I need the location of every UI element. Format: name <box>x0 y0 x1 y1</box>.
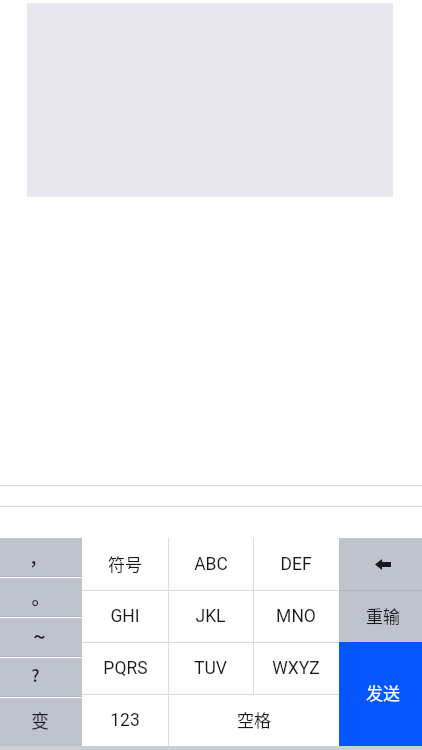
staticText: ~ <box>33 619 46 651</box>
button[interactable]: ? <box>0 658 82 697</box>
button[interactable]: JKL <box>168 590 253 642</box>
button[interactable]: 变 <box>0 698 82 746</box>
button[interactable]: ~ <box>0 618 82 657</box>
staticText: ? <box>31 662 40 687</box>
button[interactable]: DEF <box>253 538 339 590</box>
staticText: 重输 <box>366 603 400 628</box>
button[interactable]: GHI <box>82 590 168 642</box>
button[interactable]: MNO <box>253 590 339 642</box>
staticText: 空格 <box>237 707 271 732</box>
button[interactable]: 空格 <box>168 694 339 746</box>
button[interactable]: TUV <box>168 642 253 694</box>
staticText: WXYZ <box>272 658 320 679</box>
button[interactable]: Backspace <box>339 538 422 590</box>
staticText: 符号 <box>108 551 142 576</box>
staticText: MNO <box>276 606 316 627</box>
button[interactable]: 。 <box>0 578 82 617</box>
staticText: ABC <box>194 554 228 575</box>
button[interactable]: 发送 <box>339 642 422 746</box>
staticText: 变 <box>31 707 49 733</box>
button[interactable]: 符号 <box>82 538 168 590</box>
button[interactable]: 123 <box>82 694 168 746</box>
button[interactable]: ， <box>0 538 82 577</box>
staticText: ， <box>29 544 47 570</box>
staticText: JKL <box>195 606 226 627</box>
button[interactable]: WXYZ <box>253 642 339 694</box>
button[interactable]: PQRS <box>82 642 168 694</box>
staticText: DEF <box>280 554 312 575</box>
staticText: 。 <box>31 583 51 611</box>
staticText: 发送 <box>366 680 400 705</box>
staticText: 123 <box>110 710 140 731</box>
staticText: PQRS <box>103 658 148 679</box>
button[interactable]: ABC <box>168 538 253 590</box>
button[interactable]: 重输 <box>339 591 422 642</box>
staticText: TUV <box>194 658 227 679</box>
staticText: GHI <box>110 606 140 627</box>
